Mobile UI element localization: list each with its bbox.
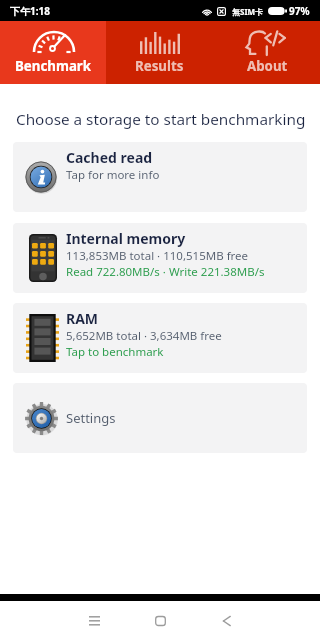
button[interactable]: Settings xyxy=(13,383,307,453)
button[interactable]: About xyxy=(213,21,320,84)
staticText: Internal memory xyxy=(66,229,186,248)
staticText: 113,853MB total · 110,515MB free xyxy=(66,248,249,264)
staticText: Results xyxy=(135,57,184,75)
button[interactable]: Recent apps xyxy=(72,601,116,640)
staticText: Cached read xyxy=(66,148,153,167)
button[interactable]: Cached read xyxy=(13,142,307,212)
staticText: RAM xyxy=(66,309,99,328)
button[interactable]: Back xyxy=(204,601,248,640)
button[interactable]: Results xyxy=(106,21,213,84)
button[interactable]: Internal memory xyxy=(13,223,307,293)
staticText: Choose a storage to start benchmarking xyxy=(16,109,306,130)
button[interactable]: Benchmark xyxy=(0,21,106,84)
staticText: Tap for more info xyxy=(66,167,160,183)
staticText: Benchmark xyxy=(15,57,92,75)
button[interactable]: Home xyxy=(138,601,182,640)
staticText: Tap to benchmark xyxy=(66,344,164,360)
staticText: Read 722.80MB/s · Write 221.38MB/s xyxy=(66,264,265,280)
staticText: 無SIM卡 xyxy=(232,6,264,17)
staticText: About xyxy=(247,57,288,75)
button[interactable]: RAM xyxy=(13,303,307,373)
staticText: Settings xyxy=(66,409,116,427)
staticText: 5,652MB total · 3,634MB free xyxy=(66,328,222,344)
staticText: 下午1:18 xyxy=(10,4,50,18)
staticText: 97% xyxy=(289,4,310,18)
